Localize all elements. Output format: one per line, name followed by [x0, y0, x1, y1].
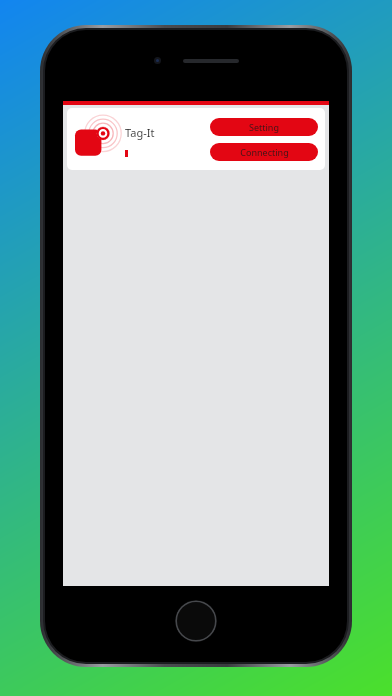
staticText: Tag-It	[125, 125, 155, 140]
other: Tag device	[75, 119, 115, 159]
button[interactable]: Connecting	[210, 143, 318, 161]
staticText: Connecting	[240, 146, 289, 158]
button[interactable]: Tag device	[67, 108, 325, 170]
staticText: Setting	[249, 121, 279, 133]
button[interactable]: Setting	[210, 118, 318, 136]
